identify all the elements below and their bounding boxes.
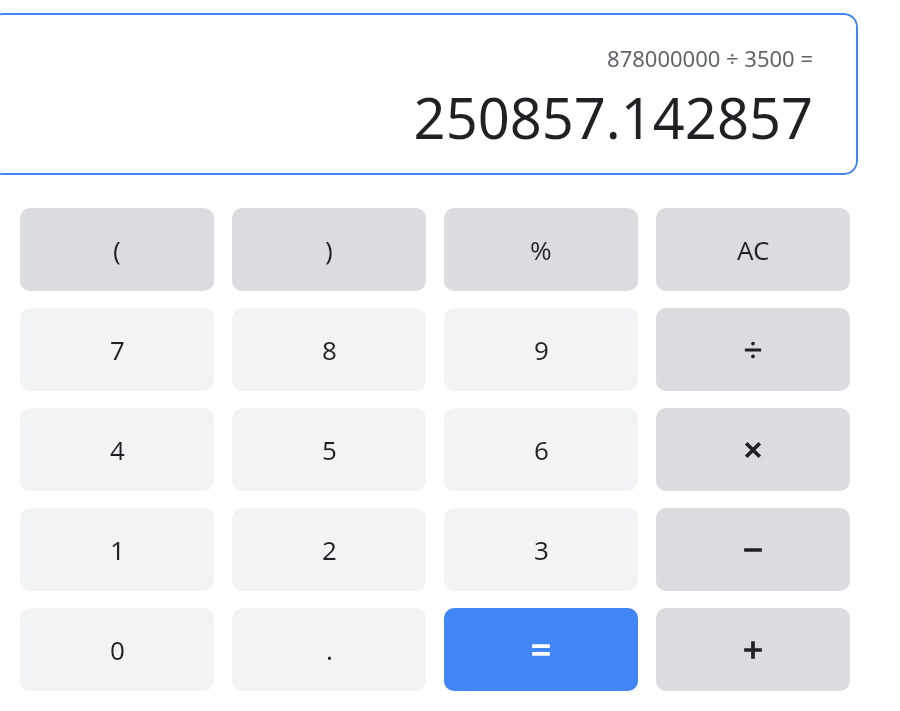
button[interactable]: Subtract (656, 508, 850, 591)
staticText: . (326, 632, 333, 667)
button[interactable]: AC (656, 208, 850, 291)
button[interactable]: Divide (656, 308, 850, 391)
staticText: ( (113, 232, 121, 267)
button[interactable]: 6 (444, 408, 638, 491)
staticText: 4 (110, 432, 125, 467)
staticText: 2 (322, 532, 337, 567)
staticText: ) (325, 232, 333, 267)
staticText: 3 (534, 532, 549, 567)
button[interactable]: Add (656, 608, 850, 691)
button[interactable]: 7 (20, 308, 214, 391)
button[interactable]: 8 (232, 308, 426, 391)
button[interactable]: ( (20, 208, 214, 291)
staticText: 7 (110, 332, 125, 367)
button[interactable]: 3 (444, 508, 638, 591)
staticText: 8 (322, 332, 337, 367)
button[interactable]: Multiply (656, 408, 850, 491)
staticText: 878000000 ÷ 3500 = (607, 43, 813, 73)
button[interactable]: ) (232, 208, 426, 291)
staticText: 0 (110, 632, 125, 667)
button[interactable]: % (444, 208, 638, 291)
button[interactable]: 5 (232, 408, 426, 491)
button[interactable]: 9 (444, 308, 638, 391)
staticText: 6 (534, 432, 549, 467)
staticText: % (530, 232, 552, 267)
button[interactable]: . (232, 608, 426, 691)
staticText: 9 (534, 332, 549, 367)
button[interactable]: 1 (20, 508, 214, 591)
button[interactable]: 0 (20, 608, 214, 691)
staticText: 5 (322, 432, 337, 467)
button[interactable]: Equals (444, 608, 638, 691)
staticText: AC (737, 232, 770, 267)
button[interactable]: 4 (20, 408, 214, 491)
button[interactable]: 2 (232, 508, 426, 591)
staticText: 250857.142857 (413, 79, 813, 155)
staticText: 1 (110, 532, 125, 567)
